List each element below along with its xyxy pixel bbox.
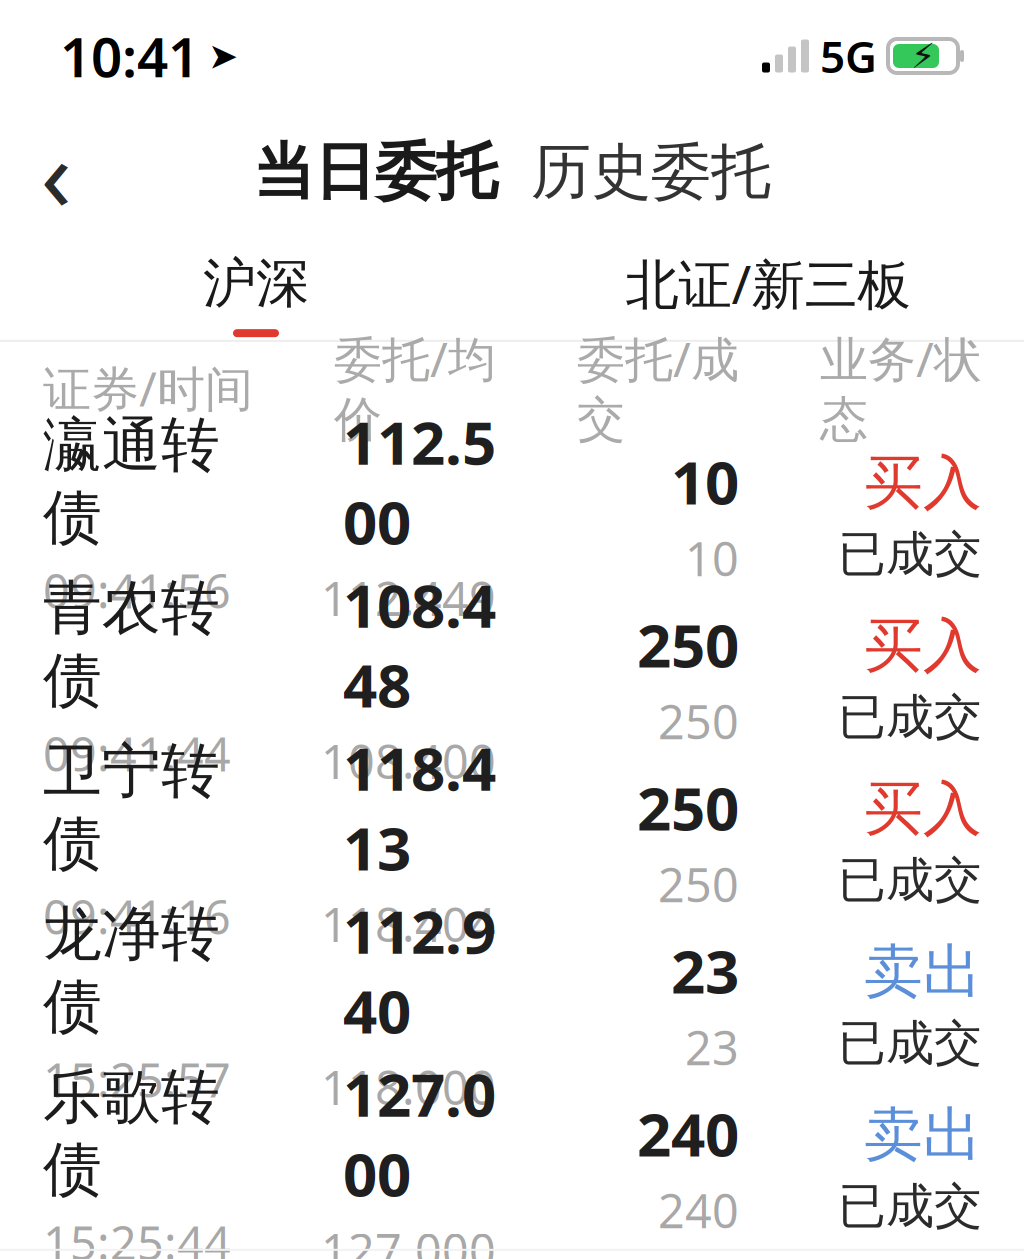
staticText: 15:25:57 bbox=[43, 1048, 231, 1110]
staticText: 23 bbox=[685, 1016, 739, 1078]
staticText: 当日委托 bbox=[253, 134, 497, 210]
staticText: 业务/状态 bbox=[820, 326, 982, 449]
staticText: 108.448 bbox=[343, 565, 496, 724]
button[interactable]: 当日委托 bbox=[253, 134, 497, 210]
staticText: 15:25:44 bbox=[43, 1211, 231, 1259]
staticText: 已成交 bbox=[838, 851, 982, 910]
button[interactable]: 历史委托 bbox=[531, 135, 771, 209]
button[interactable]: 青农转债 bbox=[0, 597, 1024, 760]
staticText: 买入 bbox=[864, 447, 982, 519]
staticText: 已成交 bbox=[838, 1177, 982, 1236]
staticText: ‹ bbox=[40, 105, 71, 239]
staticText: 已成交 bbox=[838, 525, 982, 584]
staticText: 250 bbox=[658, 690, 739, 752]
staticText: 127.000 bbox=[343, 1054, 496, 1213]
staticText: 118.413 bbox=[343, 728, 496, 887]
staticText: 证券/时间 bbox=[43, 356, 253, 420]
staticText: 委托/成交 bbox=[577, 326, 739, 449]
staticText: 240 bbox=[637, 1093, 739, 1173]
staticText: 112.940 bbox=[343, 891, 496, 1050]
staticText: 龙净转债 bbox=[43, 898, 220, 1042]
staticText: 112.500 bbox=[343, 402, 496, 561]
button[interactable]: 沪深 bbox=[0, 251, 512, 337]
staticText: 买入 bbox=[864, 773, 982, 845]
button[interactable]: 龙净转债 bbox=[0, 923, 1024, 1086]
staticText: 127.000 bbox=[321, 1219, 496, 1259]
button[interactable]: 卫宁转债 bbox=[0, 760, 1024, 923]
button[interactable]: 北证/新三板 bbox=[512, 248, 1024, 340]
staticText: 118.404 bbox=[321, 893, 496, 955]
staticText: 10 bbox=[671, 441, 739, 521]
staticText: 118.000 bbox=[321, 1056, 496, 1118]
staticText: 240 bbox=[658, 1179, 739, 1241]
staticText: ⚡︎ bbox=[911, 36, 935, 76]
staticText: 已成交 bbox=[838, 1014, 982, 1073]
staticText: 买入 bbox=[864, 610, 982, 682]
staticText: 瀛通转债 bbox=[43, 409, 220, 553]
staticText: 沪深 bbox=[203, 251, 309, 316]
staticText: 250 bbox=[637, 604, 739, 684]
staticText: 10 bbox=[685, 527, 739, 589]
staticText: 09:41:44 bbox=[43, 722, 231, 784]
staticText: 250 bbox=[658, 853, 739, 915]
staticText: 卖出 bbox=[864, 1099, 982, 1171]
staticText: 青农转债 bbox=[43, 572, 220, 716]
staticText: 委托/均价 bbox=[334, 326, 496, 449]
staticText: 卫宁转债 bbox=[43, 735, 220, 879]
staticText: 卖出 bbox=[864, 936, 982, 1008]
staticText: 5G bbox=[820, 27, 877, 85]
staticText: ➤ bbox=[208, 36, 238, 76]
staticText: 北证/新三板 bbox=[625, 248, 910, 319]
staticText: 250 bbox=[637, 767, 739, 847]
staticText: 10:41 bbox=[60, 20, 199, 92]
button[interactable]: 乐歌转债 bbox=[0, 1086, 1024, 1249]
staticText: 23 bbox=[671, 930, 739, 1010]
staticText: 09:41:56 bbox=[43, 559, 231, 621]
staticText: 09:41:16 bbox=[43, 885, 231, 947]
staticText: 已成交 bbox=[838, 688, 982, 747]
staticText: 乐歌转债 bbox=[43, 1061, 220, 1205]
staticText: 108.400 bbox=[321, 730, 496, 792]
staticText: 历史委托 bbox=[531, 135, 771, 209]
staticText: 112.449 bbox=[321, 567, 496, 629]
button[interactable]: 瀛通转债 bbox=[0, 434, 1024, 597]
button[interactable]: 返回 bbox=[8, 124, 104, 220]
